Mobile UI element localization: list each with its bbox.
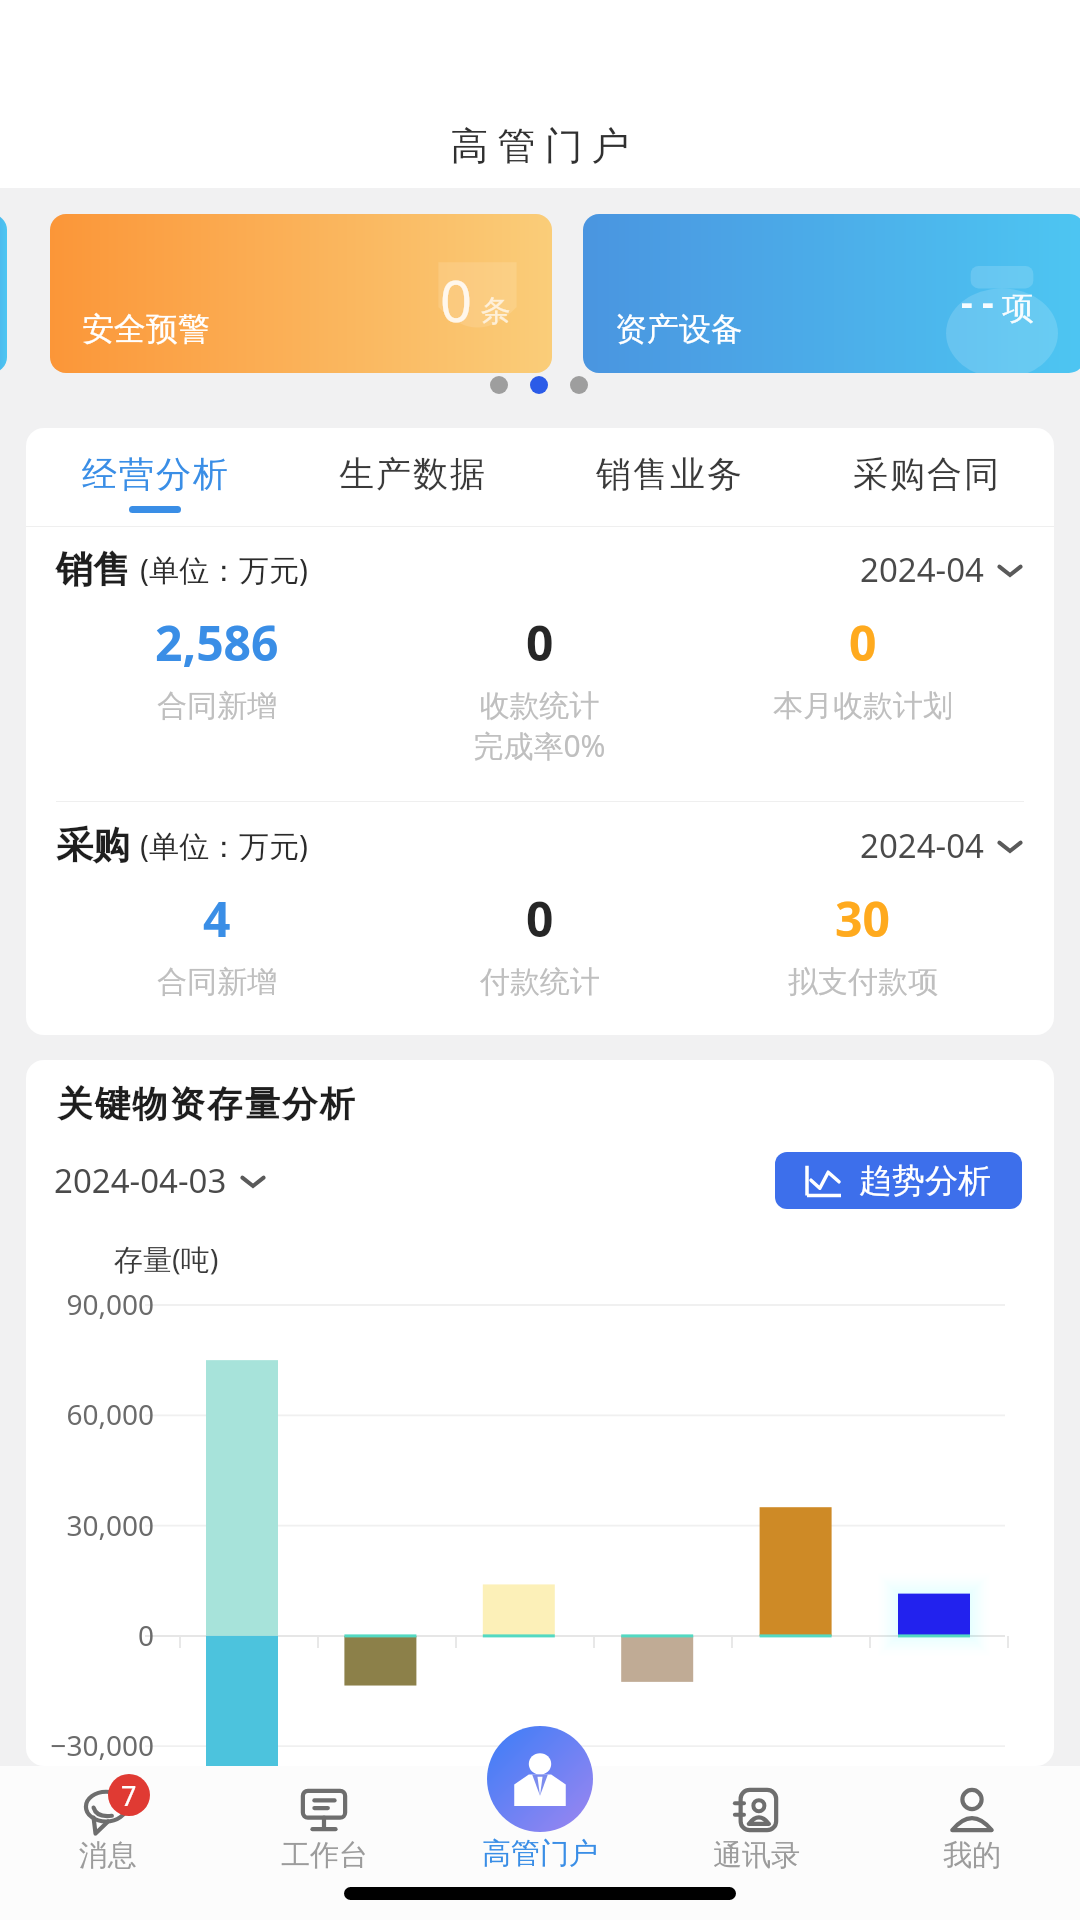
staticText: 付款统计 — [480, 963, 600, 1001]
button[interactable]: 工作台 — [216, 1766, 432, 1886]
staticText: 项 — [1002, 288, 1034, 328]
staticText: 拟支付款项 — [788, 963, 938, 1001]
button[interactable]: 采购合同 — [797, 428, 1054, 526]
button[interactable]: 销售业务 — [540, 428, 797, 526]
button[interactable]: 生产数据 — [283, 428, 540, 526]
staticText: 高管门户 — [446, 122, 634, 170]
staticText: 2,586 — [155, 610, 279, 675]
staticText: 0 — [849, 610, 877, 675]
staticText: 30,000 — [34, 1506, 154, 1544]
staticText: 0 — [526, 886, 554, 951]
staticText: 趋势分析 — [859, 1160, 991, 1202]
staticText: 0 — [34, 1616, 154, 1654]
staticText: 通讯录 — [713, 1837, 800, 1874]
staticText: (单位：万元) — [140, 549, 308, 590]
staticText: 采购合同 — [852, 452, 1000, 496]
button[interactable]: 2024-04 — [860, 541, 1024, 598]
button[interactable]: 经营分析 — [26, 428, 283, 526]
button[interactable]: 我的 — [864, 1766, 1080, 1886]
staticText: 生产数据 — [338, 452, 486, 496]
staticText: 2024-04-03 — [54, 1158, 227, 1203]
button[interactable]: 2024-04 — [860, 817, 1024, 874]
staticText: 60,000 — [34, 1395, 154, 1433]
staticText: 我的 — [943, 1837, 1001, 1874]
staticText: 2024-04 — [860, 547, 984, 592]
staticText: 本月收款计划 — [773, 687, 953, 725]
staticText: 销售业务 — [595, 452, 743, 496]
staticText: 合同新增 — [157, 687, 277, 725]
staticText: 7 — [121, 1777, 137, 1814]
button[interactable]: 趋势分析 — [775, 1152, 1022, 1209]
staticText: 销售 — [56, 546, 130, 593]
staticText: 消息 — [79, 1837, 137, 1874]
staticText: 0 — [526, 610, 554, 675]
staticText: 2024-04 — [860, 823, 984, 868]
staticText: 经营分析 — [81, 452, 229, 496]
button[interactable]: 2024-04-03 — [54, 1152, 267, 1209]
button[interactable]: 7 — [0, 1766, 216, 1886]
staticText: 存量(吨) — [114, 1239, 219, 1279]
staticText: 90,000 — [34, 1285, 154, 1323]
staticText: 4 — [203, 886, 231, 951]
staticText: 收款统计 完成率0% — [473, 687, 606, 766]
button[interactable]: 0 — [50, 214, 552, 373]
staticText: 合同新增 — [157, 963, 277, 1001]
button[interactable]: 通讯录 — [648, 1766, 864, 1886]
staticText: 0 — [440, 262, 473, 338]
staticText: 采购 — [56, 822, 130, 869]
staticText: −30,000 — [34, 1726, 154, 1764]
button[interactable]: 高管门户 — [487, 1726, 593, 1832]
staticText: 工作台 — [281, 1837, 368, 1874]
staticText: 资产设备 — [615, 309, 743, 349]
staticText: (单位：万元) — [140, 825, 308, 866]
staticText: 关键物资存量分析 — [56, 1082, 356, 1126]
staticText: - - — [961, 277, 994, 326]
button[interactable]: - - — [583, 214, 1080, 373]
staticText: 条 — [481, 292, 511, 330]
staticText: 高管门户 — [482, 1835, 598, 1872]
staticText: 安全预警 — [82, 309, 210, 349]
staticText: 30 — [835, 886, 890, 951]
